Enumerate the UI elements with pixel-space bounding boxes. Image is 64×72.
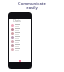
button[interactable] (11, 23, 29, 27)
button[interactable] (11, 31, 29, 35)
staticText: Communicate easily (18, 1, 46, 10)
staticText: Chats (13, 19, 21, 23)
button[interactable] (11, 47, 29, 51)
button[interactable] (11, 35, 29, 39)
button[interactable] (11, 27, 29, 31)
button[interactable] (11, 43, 29, 47)
button[interactable] (11, 39, 29, 43)
